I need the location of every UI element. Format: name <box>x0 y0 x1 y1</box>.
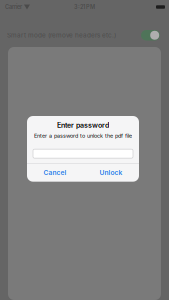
staticText: Enter password <box>57 121 109 129</box>
button[interactable]: Cancel <box>27 164 83 182</box>
staticText: Cancel <box>43 169 66 177</box>
button[interactable]: Unlock <box>83 164 139 182</box>
staticText: Enter a password to unlock the pdf file <box>34 132 132 139</box>
staticText: Smart mode (remove headers etc.) <box>7 31 116 39</box>
staticText: Carrier <box>5 4 22 10</box>
staticText: 3:21 PM <box>74 4 95 10</box>
staticText: Unlock <box>99 169 122 177</box>
button[interactable]: Smart mode toggle <box>141 30 160 40</box>
